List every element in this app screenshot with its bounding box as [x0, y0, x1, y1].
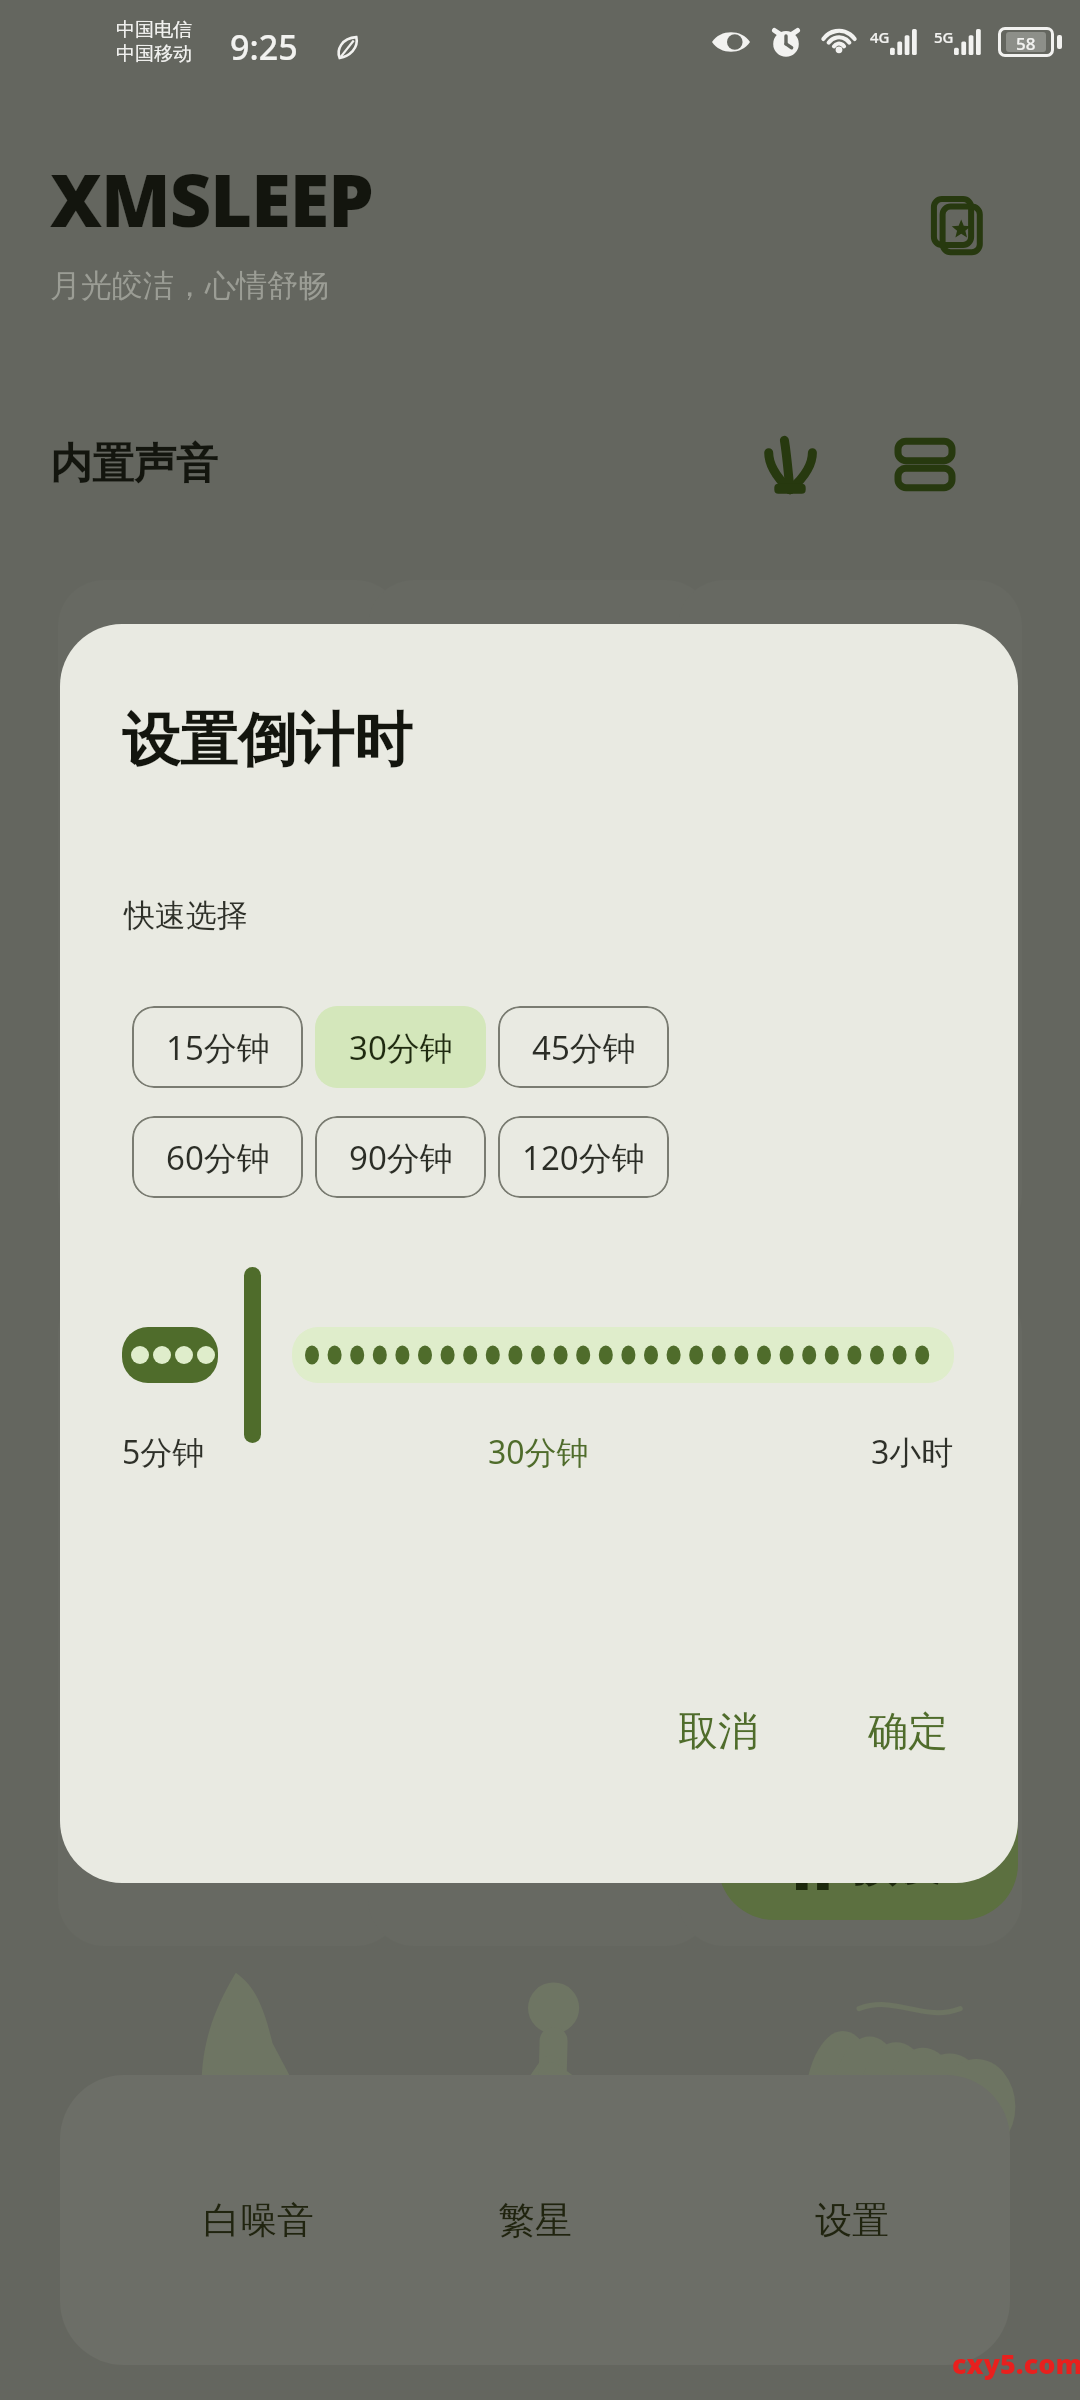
staticText: 繁星 [498, 2197, 572, 2244]
staticText: 中国移动 [116, 42, 192, 66]
staticText: 预设 [852, 1838, 940, 1893]
button[interactable] [368, 580, 712, 1240]
button[interactable]: 篝火 [58, 1286, 402, 1946]
staticText: 设置 [815, 2197, 889, 2244]
staticText: 篝火 [92, 1322, 172, 1372]
button[interactable]: 90分钟 [315, 1116, 486, 1198]
button[interactable]: 60分钟 [132, 1116, 303, 1198]
staticText: 快速选择 [124, 896, 248, 935]
staticText: 白噪音 [203, 2197, 314, 2244]
staticText: XMSLEEP [50, 150, 373, 248]
staticText: 30分钟 [349, 1025, 453, 1070]
staticText: 45分钟 [532, 1025, 636, 1070]
staticText: 取消 [678, 1706, 758, 1756]
button[interactable] [58, 580, 402, 1240]
button[interactable]: 草 [745, 420, 835, 510]
staticText: 60分钟 [166, 1135, 270, 1180]
staticText: 9:25 [230, 24, 298, 70]
button[interactable]: 15分钟 [132, 1006, 303, 1088]
staticText: 内置声音 [50, 438, 218, 491]
staticText: 4G [870, 27, 890, 47]
staticText: 5G [934, 27, 954, 47]
button[interactable]: 设置 [693, 2075, 1010, 2365]
button[interactable]: 繁星 [376, 2075, 693, 2365]
staticText: 120分钟 [522, 1135, 645, 1180]
staticText: 15分钟 [166, 1025, 270, 1070]
staticText: 30分钟 [488, 1430, 589, 1474]
staticText: 起风了 [712, 1322, 832, 1372]
staticText: 中国电信 [116, 18, 192, 42]
button[interactable] [678, 580, 1022, 1240]
staticText: cxy5.com [952, 2345, 1080, 2382]
staticText: 58 [1016, 32, 1036, 52]
button[interactable]: 列表视图 [880, 420, 970, 510]
button[interactable]: 30分钟 [315, 1006, 486, 1088]
button[interactable]: 收藏 [915, 190, 995, 270]
button[interactable]: 预设 [718, 1590, 1018, 1920]
button[interactable]: 起风了 [678, 1286, 1022, 1946]
staticText: 雪地徒步 [402, 1322, 562, 1372]
button[interactable]: 120分钟 [498, 1116, 669, 1198]
button[interactable]: 确定 [828, 1684, 988, 1778]
staticText: 5分钟 [122, 1430, 205, 1474]
button[interactable]: 45分钟 [498, 1006, 669, 1088]
button[interactable]: 雪地徒步 [368, 1286, 712, 1946]
staticText: 设置倒计时 [122, 704, 412, 777]
staticText: 月光皎洁，心情舒畅 [50, 266, 329, 305]
staticText: 3小时 [871, 1430, 954, 1474]
button[interactable]: 取消 [638, 1684, 798, 1778]
staticText: 确定 [868, 1706, 948, 1756]
button[interactable]: 白噪音 [60, 2075, 376, 2365]
button[interactable]: 时长滑块 [122, 1290, 954, 1420]
staticText: 90分钟 [349, 1135, 453, 1180]
